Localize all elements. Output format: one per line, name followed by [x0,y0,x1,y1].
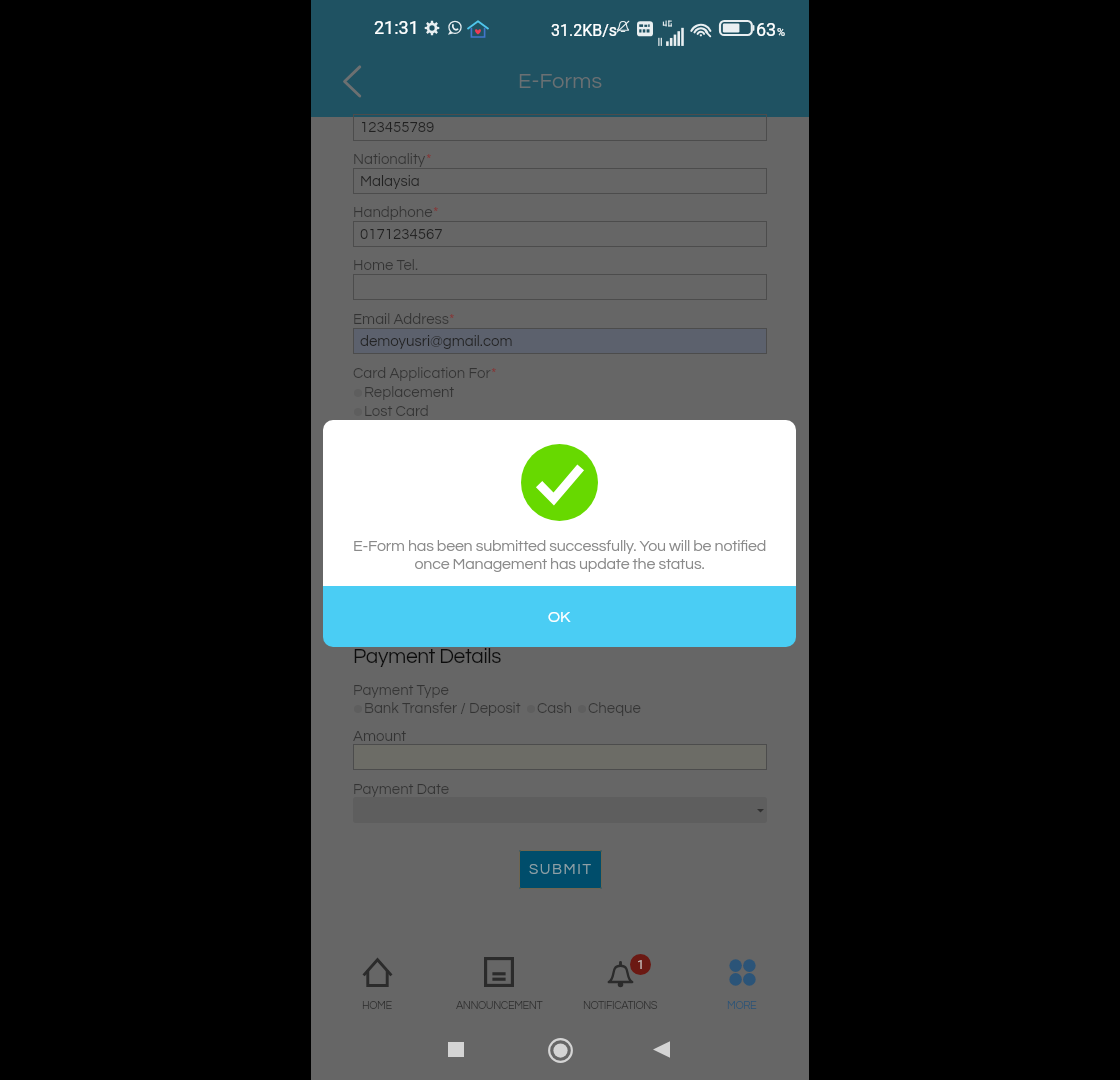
staticText: Bank Transfer / Deposit [364,701,521,716]
button[interactable]: MORE [687,948,797,1018]
staticText: 63 [756,19,777,40]
staticText: Home Tel. [353,258,418,273]
staticText: demoyusri@gmail.com [360,334,513,349]
staticText: * [491,366,497,381]
staticText: Payment Details [353,646,502,668]
button[interactable]: ANNOUNCEMENT [444,948,554,1018]
staticText: 1 [637,957,645,972]
button[interactable]: 1 [565,948,675,1018]
button[interactable]: HOME [322,948,432,1018]
button[interactable]: Home [548,1038,573,1063]
staticText: * [449,312,455,327]
staticText: 123455789 [360,120,435,135]
button[interactable]: OK [323,586,796,647]
button[interactable]: 0171234567 [353,221,767,247]
staticText: Amount [353,729,407,744]
staticText: Nationality [353,152,426,167]
staticText: 0171234567 [360,227,443,242]
button[interactable]: Back [331,58,373,100]
staticText: Cash [537,701,572,716]
button[interactable]: demoyusri@gmail.com [353,328,767,354]
staticText: Lost Card [364,404,429,419]
button[interactable]: 123455789 [353,114,767,141]
staticText: E-Form has been submitted successfully. … [343,538,776,573]
button[interactable]: SUBMIT [519,850,602,889]
staticText: * [426,152,432,167]
button[interactable]: Back [653,1041,670,1058]
staticText: Payment Date [353,782,450,797]
staticText: Handphone [353,205,433,220]
staticText: MORE [727,1000,757,1011]
staticText: Card Application For [353,366,491,381]
staticText: SUBMIT [529,862,593,877]
staticText: Email Address [353,312,449,327]
staticText: 31.2KB/s [551,21,618,40]
button[interactable]: Malaysia [353,168,767,194]
button[interactable]: Lost Card [353,404,429,419]
button[interactable] [353,274,767,300]
staticText: Payment Type [353,683,449,698]
staticText: E-Forms [518,70,603,93]
staticText: Replacement [364,385,455,400]
button[interactable]: Replacement [353,385,455,400]
staticText: NOTIFICATIONS [583,1000,658,1011]
staticText: ANNOUNCEMENT [456,1000,543,1011]
staticText: * [433,205,439,220]
staticText: OK [548,609,571,625]
staticText: 21:31 [374,17,419,38]
staticText: HOME [362,1000,392,1011]
button[interactable] [353,744,767,770]
staticText: Cheque [588,701,641,716]
staticText: Malaysia [360,174,420,189]
staticText: % [777,26,786,39]
